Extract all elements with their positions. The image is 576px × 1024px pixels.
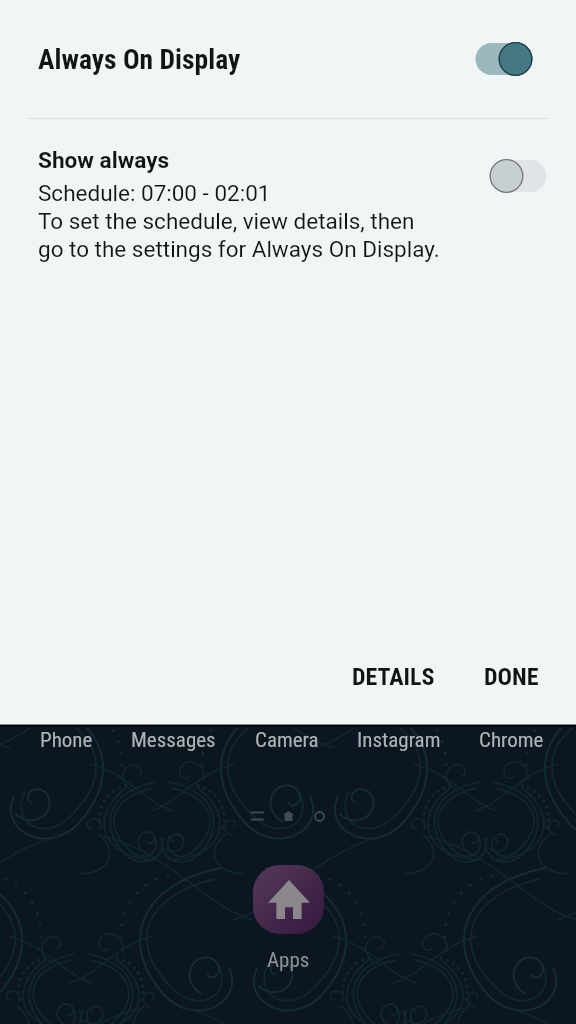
staticText: Phone bbox=[40, 728, 93, 753]
staticText: Always On Display bbox=[38, 43, 241, 75]
staticText: DETAILS bbox=[352, 663, 435, 691]
staticText: Messages bbox=[131, 728, 216, 753]
staticText: Instagram bbox=[357, 728, 441, 753]
button[interactable]: Home bbox=[279, 804, 297, 828]
staticText: Chrome bbox=[479, 728, 544, 753]
button[interactable]: Phone bbox=[40, 728, 93, 753]
button[interactable]: Apps bbox=[253, 865, 324, 934]
button[interactable]: DONE bbox=[470, 653, 552, 701]
button[interactable]: Back bbox=[310, 804, 328, 828]
button[interactable]: Camera bbox=[255, 728, 319, 753]
button[interactable]: Instagram bbox=[357, 728, 441, 753]
button[interactable]: Chrome bbox=[479, 728, 544, 753]
staticText: Camera bbox=[255, 728, 319, 753]
button[interactable]: Messages bbox=[131, 728, 216, 753]
button[interactable]: Apps bbox=[267, 948, 310, 973]
staticText: Show always bbox=[38, 147, 170, 173]
staticText: DONE bbox=[484, 663, 539, 691]
button[interactable]: Show always off bbox=[480, 155, 556, 197]
staticText: Schedule: 07:00 - 02:01 To set the sched… bbox=[38, 180, 440, 262]
button[interactable]: Recent apps bbox=[248, 804, 266, 828]
button[interactable]: DETAILS bbox=[336, 653, 450, 701]
button[interactable]: Always On Display on bbox=[466, 38, 542, 80]
